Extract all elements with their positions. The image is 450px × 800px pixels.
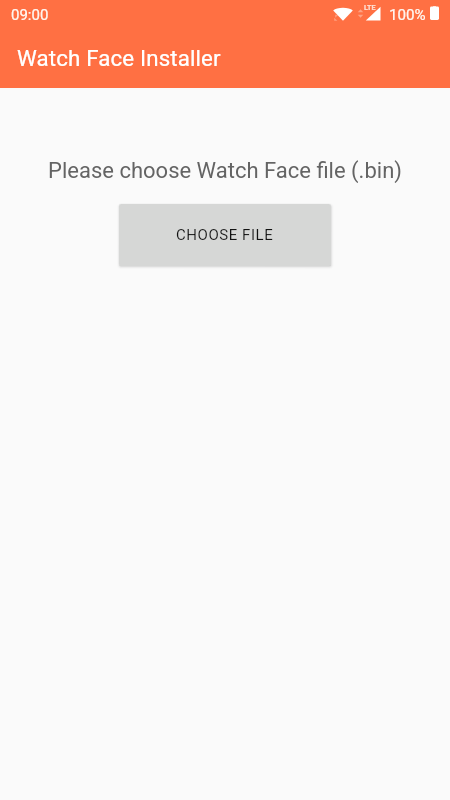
staticText: Watch Face Installer	[17, 45, 221, 71]
staticText: 100%	[389, 6, 426, 24]
other: LTE signal	[365, 6, 381, 21]
other: Battery full	[430, 6, 439, 20]
staticText: 09:00	[11, 6, 49, 24]
button[interactable]: CHOOSE FILE	[119, 204, 331, 266]
staticText: Please choose Watch Face file (.bin)	[48, 158, 402, 184]
staticText: LTE	[364, 3, 376, 11]
staticText: CHOOSE FILE	[176, 226, 274, 244]
other: Wi-Fi signal	[333, 6, 353, 21]
